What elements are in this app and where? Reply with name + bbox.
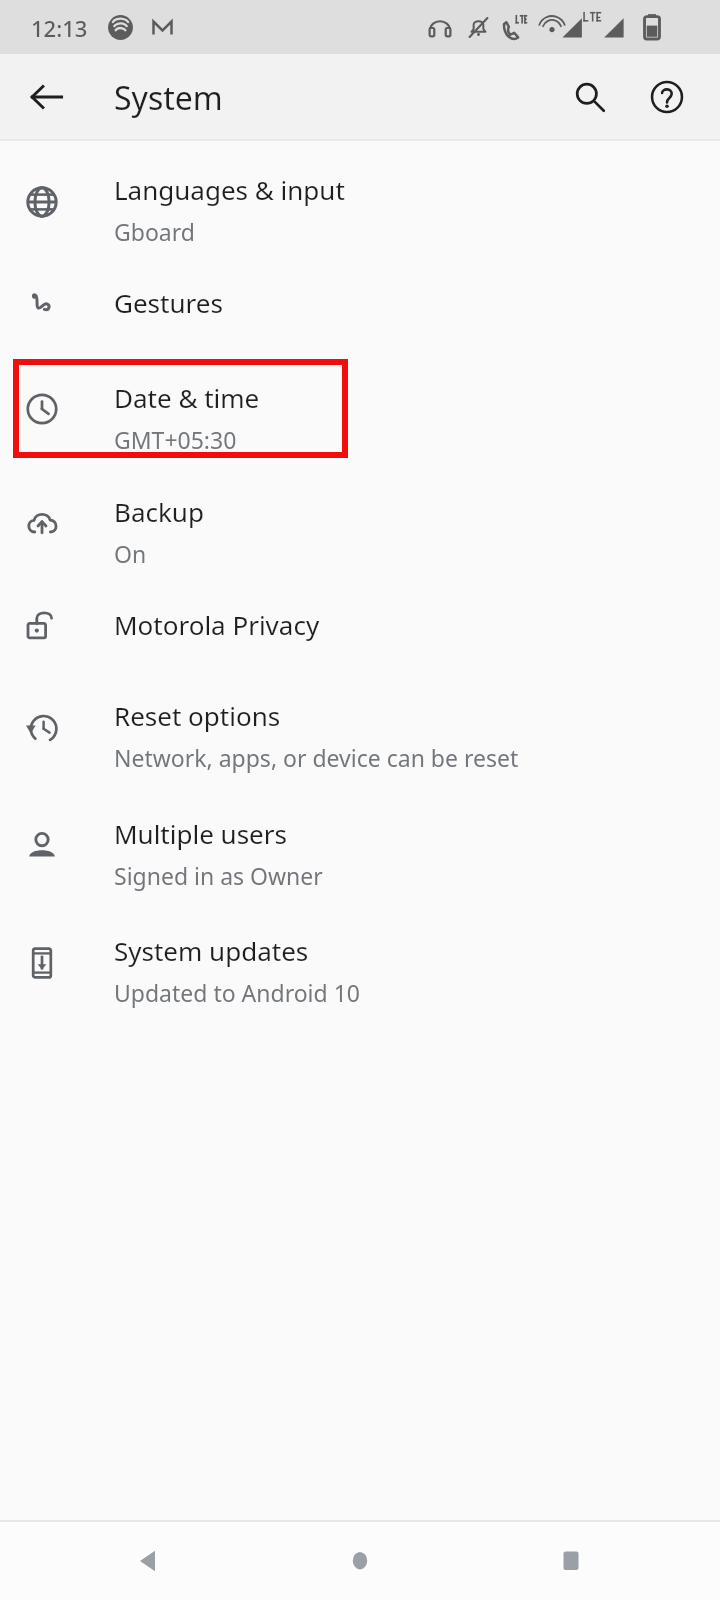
staticText: Date & time [114,380,260,415]
staticText: GMT+05:30 [114,424,237,455]
staticText: Network, apps, or device can be reset [114,742,519,773]
button[interactable]: Motorola Privacy [0,584,720,666]
button[interactable]: Languages & input [0,150,720,254]
staticText: Multiple users [114,816,287,851]
button[interactable]: System updates [0,911,720,1015]
staticText: Backup [114,494,204,529]
button[interactable]: Backup [0,472,720,576]
button[interactable]: Date & time [0,358,720,460]
staticText: Reset options [114,698,281,733]
staticText: Gboard [114,216,195,247]
button[interactable]: Multiple users [0,794,720,898]
button[interactable]: Back [113,1522,185,1600]
staticText: 12:13 [31,13,88,43]
button[interactable]: Reset options [0,676,720,780]
staticText: Gestures [114,285,223,320]
staticText: Motorola Privacy [114,607,320,642]
button[interactable]: Navigate up [13,63,81,131]
button[interactable]: Help and feedback [633,63,701,131]
staticText: Languages & input [114,172,345,207]
button[interactable]: Recent apps [535,1522,607,1600]
staticText: System updates [114,933,309,968]
staticText: System [114,76,223,120]
staticText: Updated to Android 10 [114,977,360,1008]
staticText: Signed in as Owner [114,860,323,891]
button[interactable]: Home [324,1522,396,1600]
staticText: On [114,538,147,569]
button[interactable]: Search settings [556,63,624,131]
button[interactable]: Gestures [0,262,720,344]
